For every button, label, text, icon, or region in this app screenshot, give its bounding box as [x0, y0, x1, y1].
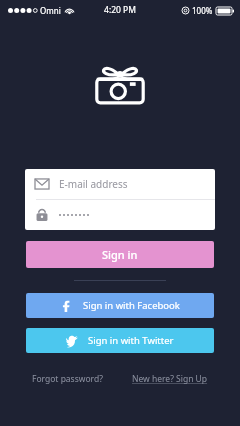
button[interactable]: Forgot password? [30, 371, 105, 387]
other: App logo [91, 55, 149, 107]
staticText: Sign in with Twitter [88, 334, 174, 347]
button[interactable]: Sign in with Twitter [26, 328, 214, 353]
button[interactable]: Sign in [26, 241, 214, 268]
staticText: New here? Sign Up [132, 373, 208, 385]
staticText: Forgot password? [32, 373, 103, 385]
staticText: E-mail address [59, 177, 128, 191]
staticText: Omni [40, 5, 61, 16]
staticText: 4:20 PM [104, 4, 136, 16]
button[interactable]: Sign in with Facebook [26, 293, 214, 318]
staticText: 100% [192, 5, 213, 16]
button[interactable]: New here? Sign Up [130, 371, 210, 387]
button[interactable]: E-mail address [25, 169, 215, 199]
staticText: Sign in with Facebook [83, 299, 180, 312]
staticText: Sign in [102, 247, 138, 262]
button[interactable] [25, 200, 215, 230]
